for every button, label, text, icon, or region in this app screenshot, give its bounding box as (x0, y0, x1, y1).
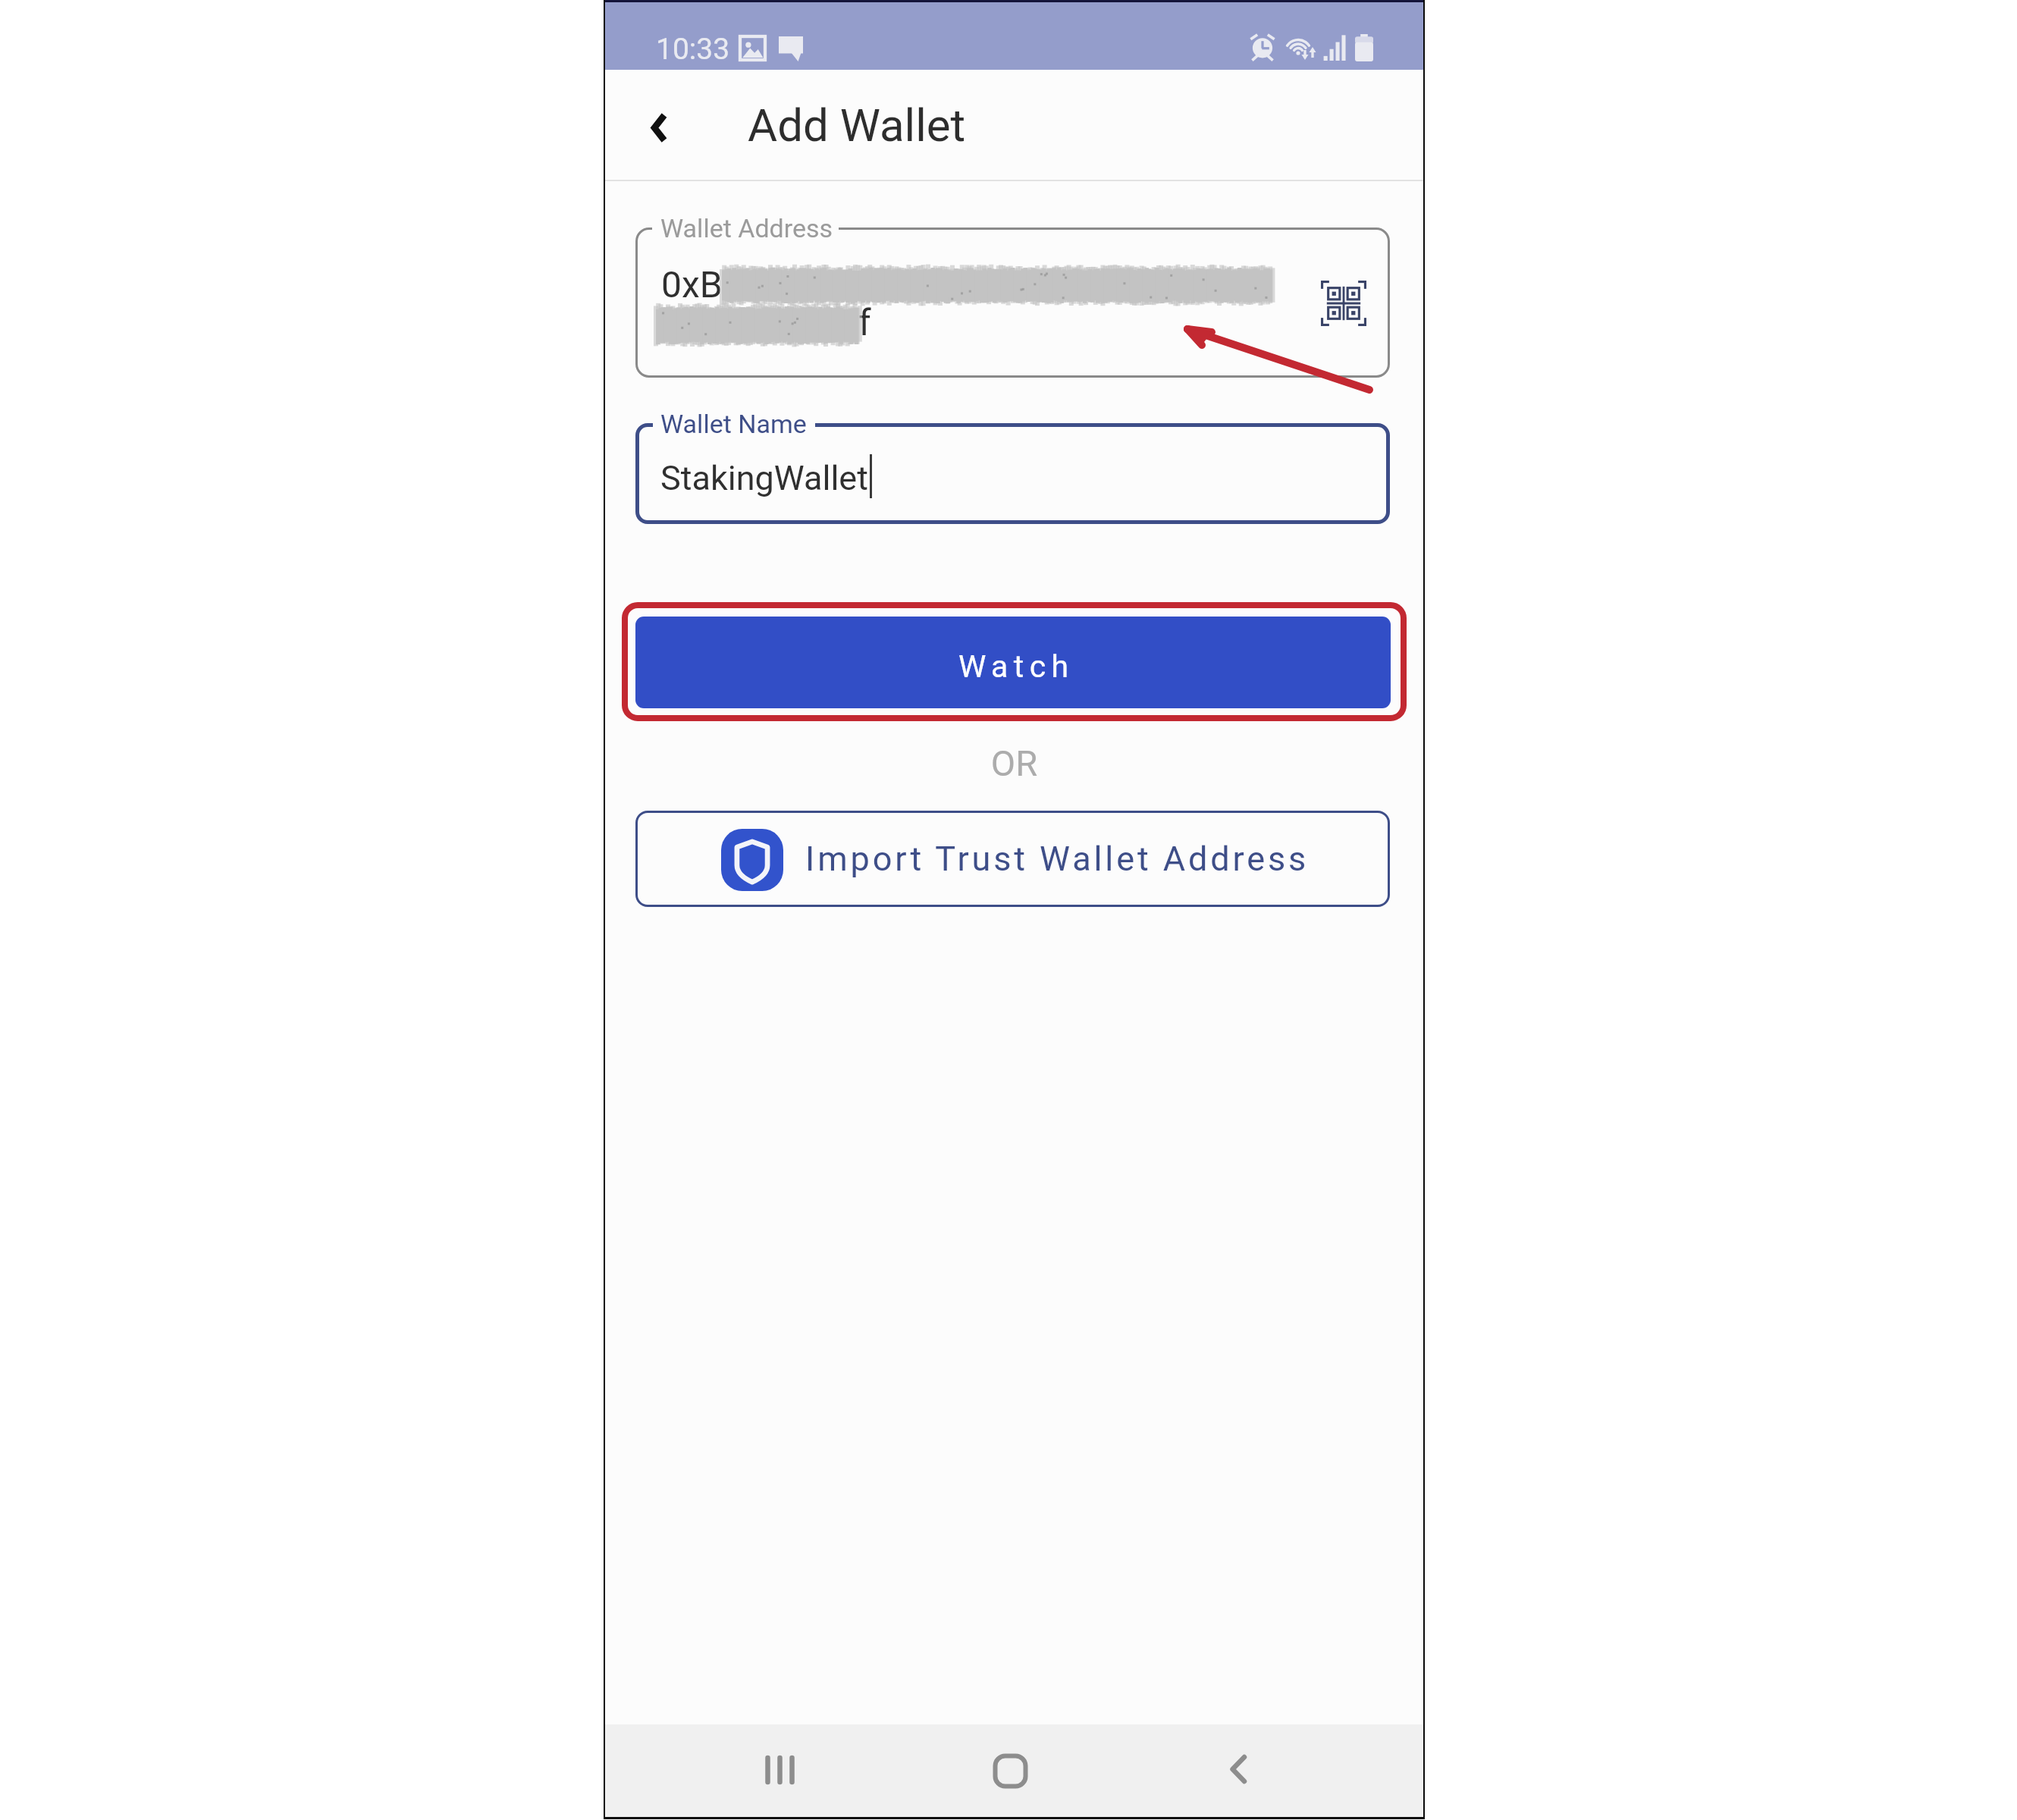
button[interactable]: 0xB (635, 227, 1390, 378)
staticText: Import Trust Wallet Address (805, 839, 1310, 879)
staticText: Watch (958, 648, 1074, 685)
button[interactable]: Home (971, 1733, 1046, 1807)
staticText: Wallet Name (660, 409, 807, 439)
staticText: 10:33 (656, 32, 730, 67)
staticText: Wallet Address (660, 213, 833, 243)
button[interactable]: Scan QR code (1302, 262, 1385, 345)
button[interactable]: Recent apps (742, 1733, 817, 1807)
staticText: StakingWallet (660, 458, 868, 498)
button[interactable]: Back (1201, 1733, 1275, 1807)
button[interactable]: Navigate back (629, 96, 690, 157)
button[interactable]: Import Trust Wallet Address (635, 811, 1390, 907)
staticText: OR (605, 742, 1423, 784)
button[interactable]: StakingWallet (635, 423, 1390, 524)
staticText: 0xB (661, 263, 723, 306)
button[interactable]: Watch (635, 617, 1391, 708)
staticText: Add Wallet (748, 99, 966, 152)
staticText: f (858, 301, 871, 344)
